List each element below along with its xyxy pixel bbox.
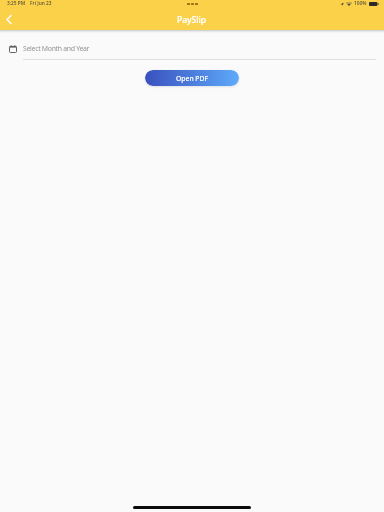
button[interactable]: Back bbox=[0, 12, 18, 27]
button[interactable]: Select Month and Year bbox=[0, 44, 384, 53]
staticText: 100% bbox=[354, 0, 367, 7]
staticText: Select Month and Year bbox=[23, 44, 90, 53]
button[interactable]: Open PDF bbox=[145, 70, 239, 86]
staticText: Fri Jun 23 bbox=[30, 0, 52, 7]
staticText: 3:25 PM bbox=[7, 0, 26, 7]
staticText: PaySlip bbox=[177, 14, 207, 26]
staticText: Open PDF bbox=[176, 74, 208, 83]
